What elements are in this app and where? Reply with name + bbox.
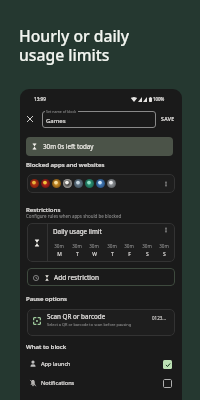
staticText: App launch — [41, 360, 71, 368]
staticText: 30m — [159, 243, 169, 249]
button[interactable]: Games — [42, 111, 156, 128]
staticText: 13:99 — [34, 96, 46, 102]
button[interactable]: More options — [27, 174, 175, 193]
staticText: Pause options — [26, 294, 68, 302]
staticText: Add restriction — [54, 273, 99, 282]
staticText: S — [163, 251, 166, 258]
staticText: T — [76, 251, 79, 258]
staticText: Games — [46, 117, 66, 125]
staticText: 30m — [107, 243, 117, 249]
staticText: Blocked apps and websites — [26, 160, 105, 168]
staticText: 0123... — [152, 315, 166, 321]
staticText: Set name of block — [46, 109, 77, 114]
button[interactable]: More options — [161, 179, 171, 189]
button[interactable]: More options — [161, 225, 171, 235]
staticText: F — [128, 251, 131, 258]
button[interactable]: Close — [24, 113, 36, 125]
button[interactable]: Notifications — [20, 375, 182, 391]
staticText: Restrictions — [26, 205, 61, 213]
staticText: 30m — [54, 243, 64, 249]
button[interactable]: Scan QR or barcode — [27, 309, 175, 336]
staticText: Select a QR or barcode to scan before pa… — [47, 322, 132, 327]
button[interactable]: 30m 0s left today — [26, 137, 173, 156]
staticText: 30m — [124, 243, 134, 249]
button[interactable]: App launch — [20, 356, 182, 372]
staticText: SAVE — [161, 115, 175, 122]
button[interactable]: SAVE — [159, 113, 177, 124]
staticText: What to block — [26, 342, 67, 350]
staticText: W — [92, 251, 97, 258]
staticText: 30m — [142, 243, 152, 249]
staticText: 30m — [89, 243, 99, 249]
staticText: Scan QR or barcode — [47, 312, 106, 321]
button[interactable]: Daily usage limit — [27, 223, 175, 262]
staticText: Hourly or daily usage limits — [19, 25, 130, 66]
staticText: 30m — [72, 243, 82, 249]
staticText: 30m 0s left today — [43, 142, 94, 151]
button[interactable]: Add restriction — [27, 268, 175, 286]
staticText: Configure rules when apps should be bloc… — [26, 213, 122, 219]
staticText: S — [146, 251, 149, 258]
staticText: Notifications — [41, 379, 75, 387]
staticText: T — [111, 251, 114, 258]
staticText: M — [57, 251, 62, 258]
staticText: Daily usage limit — [53, 227, 102, 236]
staticText: 100% — [153, 96, 165, 102]
